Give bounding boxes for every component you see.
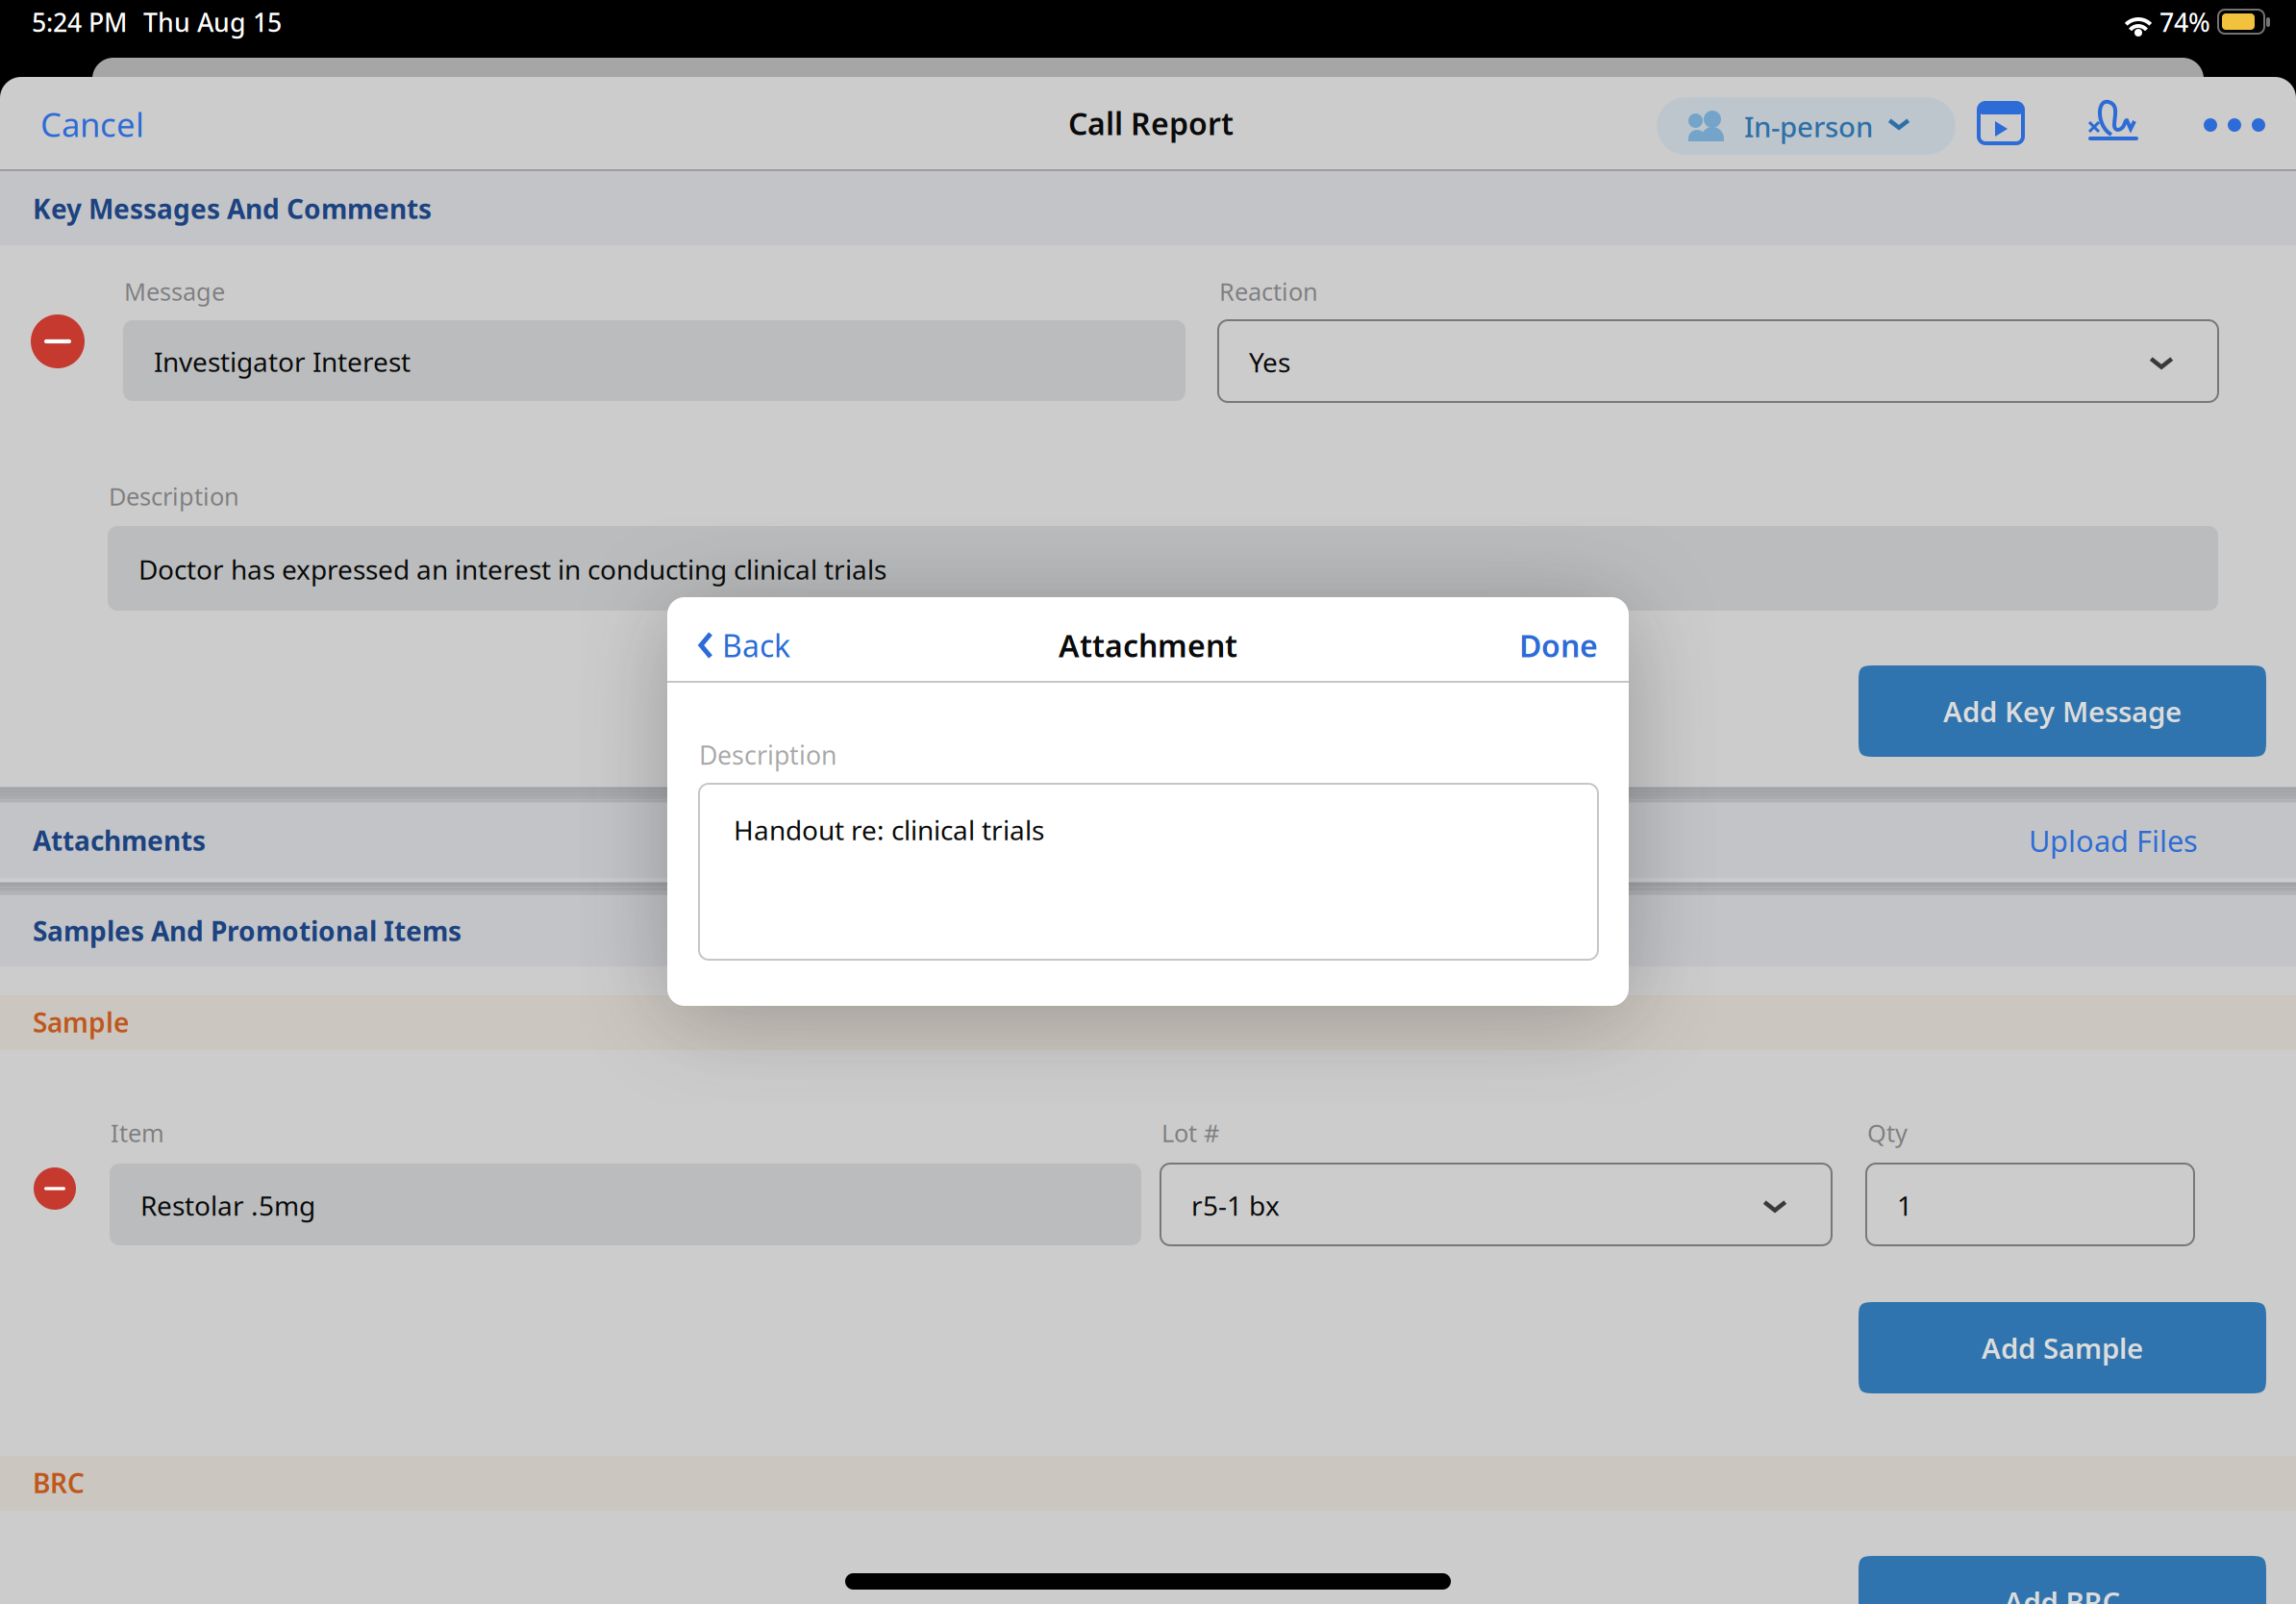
button[interactable]: Remove sample [34, 1167, 76, 1210]
staticText: Upload Files [2029, 821, 2198, 860]
staticText: Lot # [1161, 1117, 1219, 1149]
staticText: Description [109, 480, 239, 512]
staticText: BRC [33, 1465, 85, 1501]
staticText: Add Key Message [1943, 692, 2182, 730]
button[interactable]: More [2198, 108, 2271, 142]
staticText: Reaction [1219, 275, 1318, 308]
staticText: Call Report [1068, 103, 1234, 144]
button[interactable]: Media [1979, 101, 2023, 145]
button[interactable]: Back [698, 620, 881, 670]
staticText: Sample [33, 1004, 129, 1040]
staticText: 5:24 PM [32, 5, 127, 39]
button[interactable]: 1 [1866, 1164, 2194, 1245]
button[interactable]: Yes [1218, 320, 2218, 402]
staticText: Done [1519, 625, 1598, 666]
staticText: Doctor has expressed an interest in cond… [138, 551, 886, 587]
button[interactable]: Doctor has expressed an interest in cond… [108, 526, 2218, 611]
button[interactable]: Done [1461, 620, 1598, 670]
staticText: Thu Aug 15 [143, 5, 282, 39]
button[interactable]: Cancel [40, 93, 233, 155]
staticText: In-person [1744, 108, 1873, 145]
staticText: Item [111, 1117, 164, 1149]
staticText: Description [699, 738, 836, 772]
staticText: 74% [2159, 5, 2210, 39]
button[interactable]: Restolar .5mg [110, 1164, 1141, 1245]
button[interactable]: r5-1 bx [1160, 1164, 1832, 1245]
staticText: Back [722, 625, 790, 666]
staticText: Investigator Interest [154, 344, 411, 379]
staticText: Message [124, 275, 225, 308]
staticText: Add BRC [2004, 1583, 2121, 1604]
button[interactable]: Remove key message [31, 314, 85, 368]
staticText: 1 [1897, 1188, 1912, 1223]
staticText: Samples And Promotional Items [33, 913, 462, 949]
staticText: Cancel [40, 102, 144, 146]
staticText: Handout re: clinical trials [734, 812, 1044, 848]
button[interactable]: Signature [2088, 98, 2140, 142]
staticText: Attachments [33, 823, 206, 858]
button[interactable]: Investigator Interest [123, 320, 1185, 401]
staticText: Attachment [1059, 625, 1237, 666]
button[interactable]: Add Sample [1859, 1302, 2266, 1393]
button[interactable]: Add BRC [1859, 1556, 2266, 1604]
button[interactable]: Upload Files [2029, 812, 2221, 869]
staticText: Yes [1249, 344, 1290, 380]
staticText: Add Sample [1982, 1329, 2143, 1366]
button[interactable]: In-person [1657, 97, 1956, 155]
button[interactable]: Add Key Message [1859, 665, 2266, 757]
staticText: r5-1 bx [1191, 1188, 1280, 1223]
staticText: Restolar .5mg [140, 1188, 315, 1223]
staticText: Key Messages And Comments [33, 191, 432, 227]
staticText: Qty [1867, 1117, 1908, 1149]
